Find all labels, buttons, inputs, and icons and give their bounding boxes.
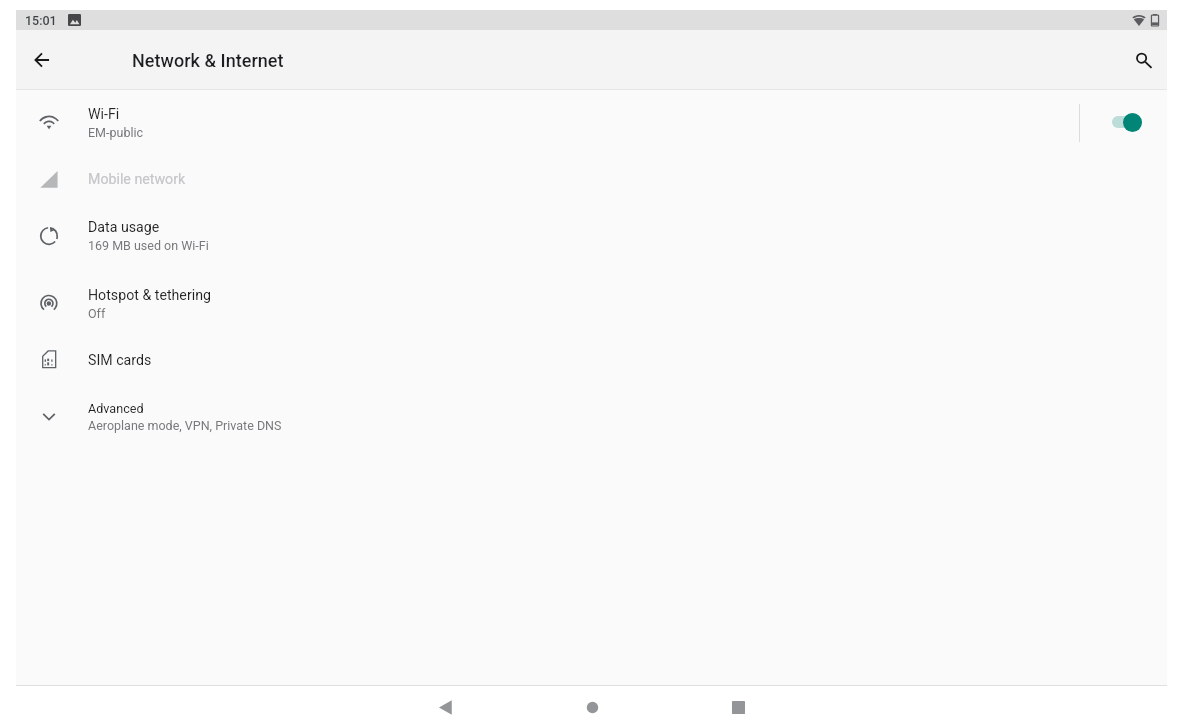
button[interactable]: Hotspot & tethering (16, 271, 1167, 339)
button[interactable]: Mobile network (16, 158, 1167, 203)
staticText: Off (88, 306, 106, 321)
button[interactable]: SIM cards (16, 339, 1167, 384)
staticText: Advanced (88, 401, 144, 416)
staticText: EM-public (88, 125, 144, 140)
button[interactable]: Search (1119, 36, 1167, 84)
button[interactable]: Back (18, 36, 66, 84)
button[interactable]: Wi-Fi (16, 90, 1167, 158)
staticText: SIM cards (88, 352, 152, 369)
staticText: Wi-Fi (88, 106, 120, 123)
button[interactable]: Back (373, 686, 519, 728)
button[interactable]: Wi-Fi toggle (1080, 88, 1167, 156)
staticText: Mobile network (88, 171, 186, 188)
staticText: Data usage (88, 219, 160, 236)
staticText: Aeroplane mode, VPN, Private DNS (88, 418, 282, 433)
staticText: 15:01 (25, 13, 57, 28)
staticText: Hotspot & tethering (88, 287, 211, 304)
button[interactable]: Home (519, 686, 665, 728)
staticText: Network & Internet (132, 50, 284, 71)
button[interactable]: Advanced (16, 384, 1167, 452)
button[interactable]: Data usage (16, 203, 1167, 271)
button[interactable]: Recent apps (665, 686, 811, 728)
staticText: 169 MB used on Wi-Fi (88, 238, 209, 253)
